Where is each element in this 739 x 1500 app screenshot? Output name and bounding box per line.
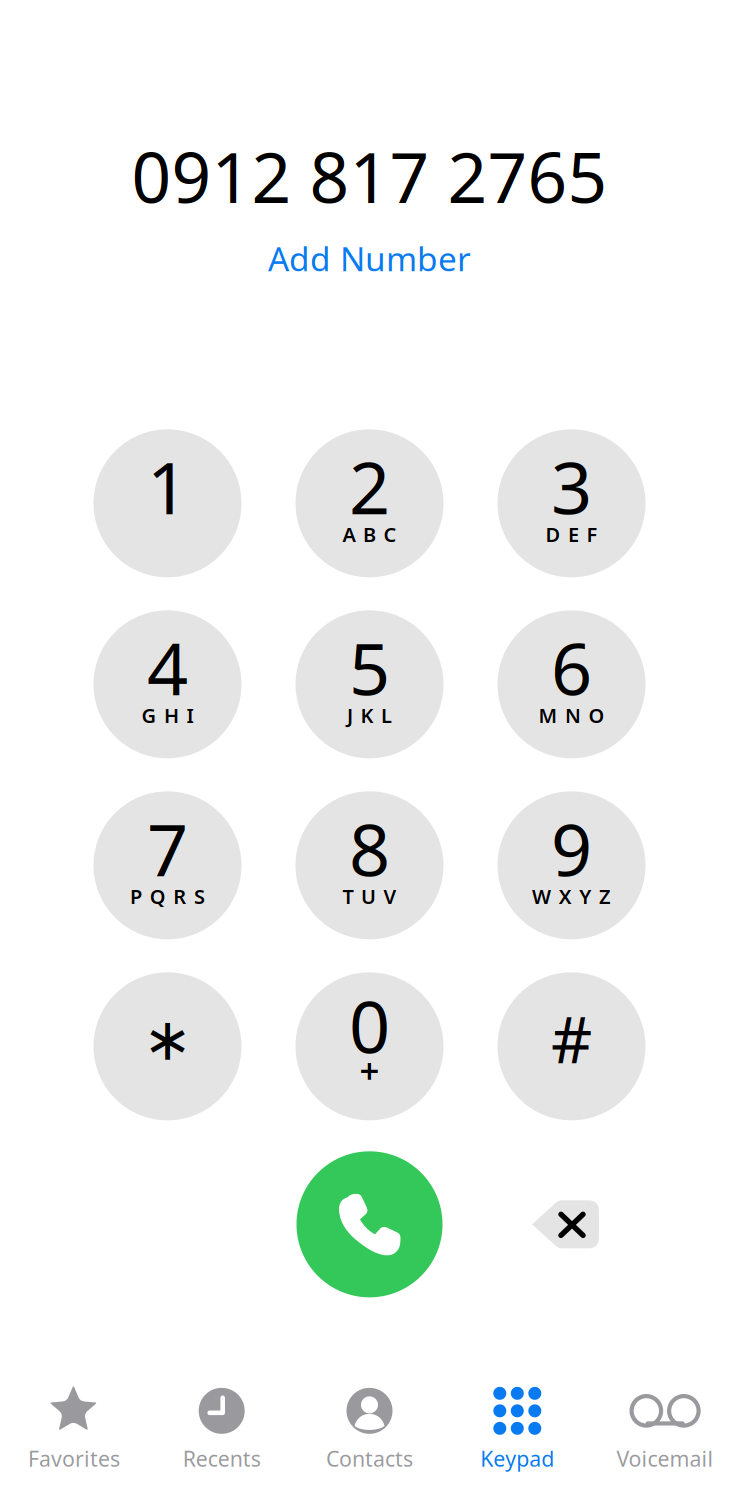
staticText: F bbox=[587, 521, 598, 548]
button[interactable]: Contacts bbox=[296, 1387, 443, 1473]
button[interactable]: Add Number bbox=[268, 236, 471, 280]
staticText: # bbox=[551, 996, 592, 1081]
staticText: B bbox=[363, 521, 376, 548]
staticText: W bbox=[532, 883, 551, 910]
button[interactable]: Delete bbox=[496, 1151, 644, 1297]
staticText: H bbox=[164, 702, 179, 729]
button[interactable]: ∗ bbox=[93, 972, 241, 1120]
staticText: Recents bbox=[183, 1444, 261, 1473]
staticText: G bbox=[141, 702, 156, 729]
button[interactable]: 0 bbox=[295, 972, 443, 1120]
staticText: 5 bbox=[349, 619, 390, 715]
staticText: P bbox=[130, 883, 142, 910]
staticText: U bbox=[361, 883, 376, 910]
button[interactable]: Voicemail bbox=[591, 1387, 739, 1473]
button[interactable]: Favorites bbox=[0, 1387, 148, 1473]
staticText: Z bbox=[599, 883, 611, 910]
button[interactable]: 1 bbox=[93, 429, 241, 577]
staticText: + bbox=[359, 1047, 379, 1093]
button[interactable]: 4 bbox=[93, 610, 241, 758]
staticText: 8 bbox=[349, 800, 390, 896]
staticText: Q bbox=[150, 883, 166, 910]
staticText: Keypad bbox=[480, 1444, 554, 1473]
staticText: 4 bbox=[147, 619, 188, 715]
button[interactable]: 9 bbox=[497, 791, 645, 939]
button[interactable]: 6 bbox=[497, 610, 645, 758]
staticText: N bbox=[565, 702, 581, 729]
staticText: 1 bbox=[147, 438, 188, 534]
staticText: 3 bbox=[551, 438, 592, 534]
button[interactable]: # bbox=[497, 972, 645, 1120]
staticText: E bbox=[568, 521, 579, 548]
staticText: 9 bbox=[551, 800, 592, 896]
button[interactable]: Recents bbox=[148, 1387, 296, 1473]
staticText: Voicemail bbox=[617, 1444, 714, 1473]
button[interactable]: Call bbox=[296, 1151, 442, 1297]
staticText: O bbox=[589, 702, 605, 729]
staticText: X bbox=[559, 883, 572, 910]
staticText: T bbox=[342, 883, 353, 910]
button[interactable]: 8 bbox=[295, 791, 443, 939]
staticText: ∗ bbox=[143, 1006, 192, 1073]
staticText: 6 bbox=[551, 619, 592, 715]
staticText: I bbox=[187, 702, 194, 729]
button[interactable]: 3 bbox=[497, 429, 645, 577]
button[interactable]: 2 bbox=[295, 429, 443, 577]
staticText: L bbox=[381, 702, 392, 729]
staticText: J bbox=[347, 702, 353, 729]
button[interactable]: 5 bbox=[295, 610, 443, 758]
staticText: V bbox=[384, 883, 397, 910]
staticText: 0912 817 2765 bbox=[131, 130, 607, 222]
staticText: Y bbox=[579, 883, 591, 910]
staticText: 0 bbox=[349, 977, 390, 1073]
button[interactable]: Keypad bbox=[443, 1387, 591, 1473]
staticText: Contacts bbox=[326, 1444, 413, 1473]
staticText: Add Number bbox=[268, 236, 471, 280]
staticText: C bbox=[384, 521, 397, 548]
staticText: 2 bbox=[349, 438, 390, 534]
staticText: 7 bbox=[147, 800, 188, 896]
staticText: M bbox=[538, 702, 557, 729]
staticText: Favorites bbox=[28, 1444, 120, 1473]
staticText: K bbox=[360, 702, 373, 729]
staticText: S bbox=[194, 883, 205, 910]
button[interactable]: 7 bbox=[93, 791, 241, 939]
staticText: R bbox=[173, 883, 186, 910]
staticText: A bbox=[342, 521, 355, 548]
staticText: D bbox=[545, 521, 560, 548]
